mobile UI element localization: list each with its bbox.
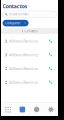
button[interactable]: Inicio	[1, 103, 15, 116]
button[interactable]: Alfonso Ramírez	[1, 48, 58, 62]
button[interactable]: Compartir	[3, 20, 29, 26]
button[interactable]: Contactos	[15, 103, 29, 116]
staticText: 4 Contactos	[21, 29, 37, 33]
button[interactable]: Alfonso Ramírez	[1, 62, 58, 75]
button[interactable]: Alfonso Ramírez	[1, 75, 58, 89]
staticText: Alfonso Ramírez	[9, 38, 38, 44]
staticText: Alfonso Ramírez	[9, 52, 38, 57]
staticText: Buscar contacto	[9, 12, 29, 16]
button[interactable]: Ajustes	[44, 103, 58, 116]
staticText: Compartir	[5, 21, 20, 25]
staticText: Alfonso Ramírez	[9, 79, 38, 85]
staticText: Contactos	[3, 3, 28, 10]
button[interactable]: Recientes	[29, 103, 44, 116]
staticText: Alfonso Ramírez	[9, 66, 38, 71]
button[interactable]: Alfonso Ramírez	[1, 34, 58, 48]
